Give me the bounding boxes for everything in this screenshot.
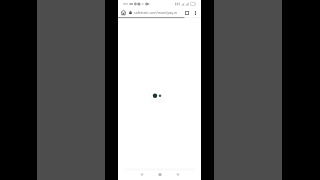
button[interactable]: Home <box>154 168 166 180</box>
button[interactable]: More options <box>191 8 199 17</box>
button[interactable]: Recent apps <box>172 168 184 180</box>
button[interactable]: safetrain.com/main/pay.in <box>129 8 183 17</box>
staticText: safetrain.com/main/pay.in <box>134 10 178 15</box>
button[interactable]: Back <box>136 168 148 180</box>
button[interactable]: Switch tabs <box>183 8 191 17</box>
button[interactable]: Home <box>118 8 129 17</box>
